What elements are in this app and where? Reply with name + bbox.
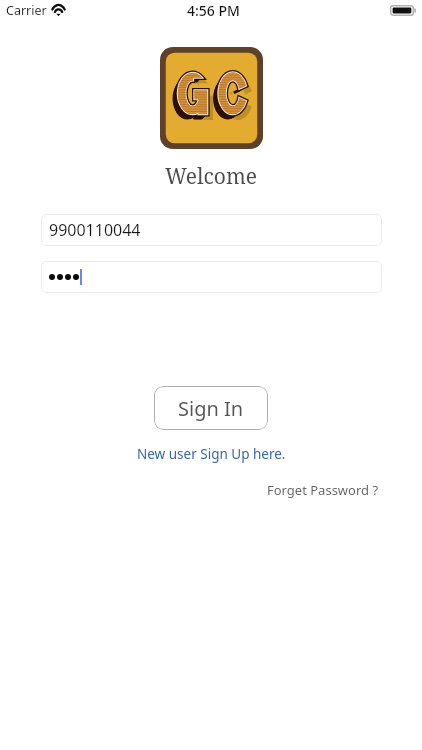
staticText: New user Sign Up here.: [137, 445, 286, 463]
button[interactable]: Sign In: [154, 386, 268, 430]
staticText: Sign In: [178, 395, 244, 422]
button[interactable]: 9900110044: [41, 214, 382, 246]
button[interactable]: [41, 261, 382, 293]
staticText: 9900110044: [49, 219, 141, 241]
button[interactable]: New user Sign Up here.: [133, 443, 290, 465]
other: GC logo: [160, 47, 263, 149]
staticText: Forget Password ?: [267, 481, 379, 499]
staticText: 4:56 PM: [187, 1, 240, 20]
staticText: Welcome: [165, 162, 258, 191]
button[interactable]: Forget Password ?: [263, 479, 383, 501]
staticText: Carrier: [6, 2, 47, 19]
